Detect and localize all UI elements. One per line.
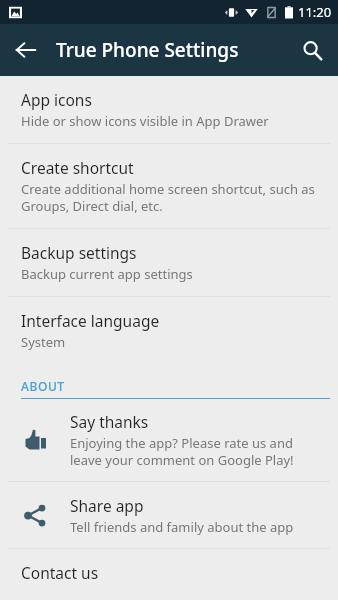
button[interactable]: Back: [6, 30, 46, 70]
button[interactable]: Search: [292, 30, 332, 70]
button[interactable]: Contact us: [0, 549, 338, 600]
button[interactable]: Create shortcut: [0, 144, 338, 228]
staticText: Create shortcut: [21, 157, 134, 178]
staticText: 11:20: [298, 3, 332, 21]
staticText: Enjoying the app? Please rate us and lea…: [70, 434, 322, 469]
staticText: Interface language: [21, 310, 160, 331]
staticText: Tell friends and family about the app: [70, 518, 294, 536]
button[interactable]: Say thanks: [0, 399, 338, 481]
staticText: Hide or show icons visible in App Drawer: [21, 112, 269, 130]
button[interactable]: Share app: [0, 482, 338, 548]
button[interactable]: Backup settings: [0, 229, 338, 296]
staticText: ABOUT: [21, 378, 65, 394]
button[interactable]: App icons: [0, 76, 338, 143]
staticText: System: [21, 333, 66, 351]
staticText: Say thanks: [70, 411, 149, 432]
staticText: Contact us: [21, 562, 99, 583]
button[interactable]: Interface language: [0, 297, 338, 364]
staticText: Backup settings: [21, 242, 137, 263]
staticText: Create additional home screen shortcut, …: [21, 180, 322, 215]
staticText: App icons: [21, 89, 92, 110]
staticText: Backup current app settings: [21, 265, 193, 283]
staticText: Share app: [70, 495, 144, 516]
staticText: True Phone Settings: [56, 37, 239, 63]
